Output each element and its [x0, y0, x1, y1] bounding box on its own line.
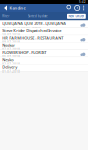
staticText: Kandine: [10, 5, 26, 11]
staticText: 10.07.2018: [2, 33, 20, 37]
button[interactable]: HR FARMHOUSE - RESTAURANT: [0, 35, 88, 42]
button[interactable]: History: [73, 4, 81, 12]
staticText: Filter: [2, 14, 9, 18]
staticText: Nesker: [2, 42, 15, 48]
button[interactable]: NEW ORDER: [67, 14, 86, 19]
staticText: HR FARMHOUSE - RESTAURANT: [2, 35, 63, 40]
button[interactable]: Nesker: [0, 42, 88, 50]
button[interactable]: Delivery: [0, 64, 88, 72]
button[interactable]: Search: [66, 4, 73, 12]
button[interactable]: LJUBLJANA LJUB 2018 - LJUBLJANA: [0, 21, 88, 28]
staticText: LJUBLJANA LJUB 2018 - LJUBLJANA: [2, 21, 66, 26]
staticText: Sorted by date: [28, 14, 48, 18]
button[interactable]: More: [81, 4, 86, 12]
staticText: FLOWERSHOP - FLORIST: [2, 50, 46, 55]
staticText: 5:42: [79, 0, 86, 4]
staticText: NEW ORDER: [68, 14, 84, 18]
staticText: 12.07.2018 08:45 Accept: [2, 26, 41, 30]
button[interactable]: Nesko: [0, 57, 88, 64]
staticText: Steve Krider Dispatched Invoice: [2, 28, 61, 33]
button[interactable]: Steve Krider Dispatched Invoice: [0, 28, 88, 35]
staticText: 01.07.2018: [2, 70, 20, 73]
staticText: Nesko: [2, 57, 13, 62]
button[interactable]: Back: [2, 4, 10, 12]
staticText: Delivery: [2, 64, 17, 70]
staticText: 02.07.2018: [2, 63, 20, 66]
staticText: 05.07.2018: [2, 55, 20, 59]
button[interactable]: FLOWERSHOP - FLORIST: [0, 50, 88, 57]
staticText: 07.07.2018: [2, 48, 20, 51]
staticText: 09.07.2018: [2, 41, 20, 44]
